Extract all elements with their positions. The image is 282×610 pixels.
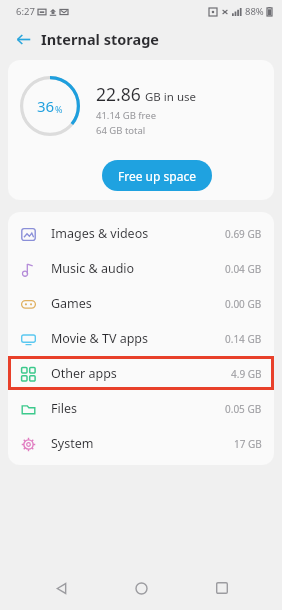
staticText: Internal storage xyxy=(41,29,160,49)
button[interactable]: Games xyxy=(8,286,274,321)
staticText: Images & videos xyxy=(51,225,149,242)
staticText: 6:27 xyxy=(16,5,35,18)
button[interactable]: Files xyxy=(8,391,274,426)
staticText: Movie & TV apps xyxy=(51,330,149,347)
staticText: Free up space xyxy=(118,168,196,184)
staticText: GB in use xyxy=(145,89,197,105)
button[interactable]: System xyxy=(8,426,274,461)
staticText: 36 xyxy=(37,96,55,116)
staticText: 88% xyxy=(245,5,264,18)
staticText: 4.9 GB xyxy=(231,367,262,381)
button[interactable]: Recent apps xyxy=(202,568,242,608)
staticText: 0.00 GB xyxy=(225,297,262,311)
staticText: 64 GB total xyxy=(96,124,146,137)
staticText: 0.04 GB xyxy=(225,262,262,276)
staticText: 41.14 GB free xyxy=(96,109,157,122)
button[interactable]: Home xyxy=(121,568,161,608)
staticText: Files xyxy=(51,400,77,417)
button[interactable]: Images & videos xyxy=(8,216,274,251)
staticText: 0.14 GB xyxy=(225,332,262,346)
button[interactable]: Other apps xyxy=(8,356,274,391)
staticText: 0.05 GB xyxy=(225,402,262,416)
button[interactable]: Back xyxy=(10,26,36,52)
button[interactable]: Movie & TV apps xyxy=(8,321,274,356)
staticText: 0.69 GB xyxy=(225,227,262,241)
button[interactable]: Free up space xyxy=(102,160,212,191)
staticText: Games xyxy=(51,295,92,312)
staticText: System xyxy=(51,435,94,452)
button[interactable]: Back xyxy=(41,568,81,608)
button[interactable]: Music & audio xyxy=(8,251,274,286)
staticText: 22.86 xyxy=(96,82,141,106)
staticText: 17 GB xyxy=(234,437,262,451)
staticText: Other apps xyxy=(51,365,117,382)
staticText: % xyxy=(55,103,63,115)
staticText: Music & audio xyxy=(51,260,135,277)
